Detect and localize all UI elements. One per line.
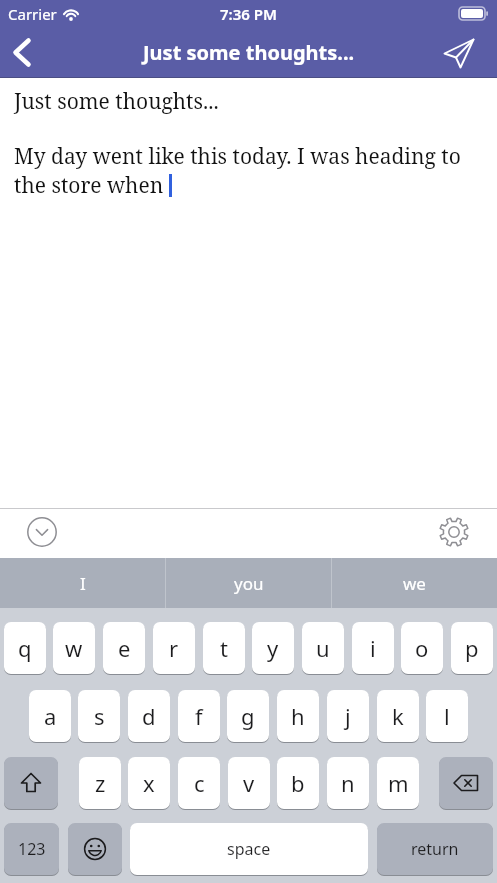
staticText: x — [143, 768, 155, 798]
button[interactable]: return — [377, 823, 493, 875]
staticText: m — [388, 768, 409, 798]
button[interactable]: y — [252, 622, 294, 674]
button[interactable]: m — [377, 757, 419, 809]
staticText: the store when — [14, 171, 169, 200]
button[interactable]: r — [153, 622, 195, 674]
staticText: w — [65, 633, 83, 663]
button[interactable] — [0, 28, 44, 77]
staticText: t — [220, 633, 228, 663]
button[interactable]: z — [79, 757, 121, 809]
button[interactable]: j — [327, 690, 369, 742]
button[interactable] — [4, 757, 58, 809]
button[interactable]: a — [29, 690, 71, 742]
staticText: Carrier — [8, 4, 57, 24]
button[interactable]: g — [227, 690, 269, 742]
button[interactable]: l — [426, 690, 468, 742]
button[interactable]: we — [332, 558, 497, 608]
staticText: u — [316, 633, 330, 663]
staticText: Just some thoughts... — [14, 87, 219, 116]
button[interactable] — [439, 31, 479, 75]
staticText: e — [118, 633, 131, 663]
button[interactable]: h — [277, 690, 319, 742]
staticText: s — [94, 701, 105, 731]
staticText: j — [345, 701, 351, 731]
staticText: f — [195, 701, 203, 731]
button[interactable]: I — [0, 558, 165, 608]
staticText: o — [415, 633, 429, 663]
button[interactable]: space — [130, 823, 368, 875]
button[interactable]: b — [277, 757, 319, 809]
staticText: Just some thoughts... — [143, 39, 355, 66]
button[interactable] — [26, 516, 58, 548]
button[interactable]: you — [166, 558, 331, 608]
button[interactable]: 123 — [4, 823, 59, 875]
button[interactable]: s — [78, 690, 120, 742]
staticText: q — [18, 633, 32, 663]
staticText: l — [444, 701, 450, 731]
button[interactable]: p — [451, 622, 493, 674]
button[interactable]: i — [352, 622, 394, 674]
staticText: space — [227, 838, 271, 860]
staticText: k — [392, 701, 404, 731]
staticText: g — [241, 701, 255, 731]
staticText: r — [169, 633, 179, 663]
button[interactable]: q — [4, 622, 46, 674]
staticText: b — [291, 768, 305, 798]
staticText: I — [80, 572, 86, 595]
staticText: 123 — [18, 838, 46, 860]
button[interactable]: u — [302, 622, 344, 674]
button[interactable]: k — [377, 690, 419, 742]
staticText: a — [44, 701, 57, 731]
staticText: z — [95, 768, 106, 798]
staticText: h — [291, 701, 305, 731]
button[interactable] — [438, 516, 470, 548]
staticText: v — [243, 768, 255, 798]
button[interactable]: v — [228, 757, 270, 809]
button[interactable]: c — [178, 757, 220, 809]
button[interactable] — [68, 823, 122, 875]
staticText: we — [403, 572, 426, 595]
staticText: p — [465, 633, 479, 663]
staticText: 7:36 PM — [220, 4, 277, 24]
button[interactable]: n — [327, 757, 369, 809]
button[interactable]: f — [178, 690, 220, 742]
button[interactable]: w — [53, 622, 95, 674]
button[interactable]: o — [401, 622, 443, 674]
staticText: d — [142, 701, 156, 731]
staticText: i — [370, 633, 376, 663]
staticText: return — [411, 838, 459, 860]
button[interactable]: x — [128, 757, 170, 809]
button[interactable] — [439, 757, 493, 809]
staticText: c — [194, 768, 205, 798]
staticText: y — [267, 633, 279, 663]
button[interactable]: t — [203, 622, 245, 674]
staticText: My day went like this today. I was headi… — [14, 142, 461, 171]
button[interactable]: e — [103, 622, 145, 674]
button[interactable]: d — [128, 690, 170, 742]
staticText: n — [341, 768, 355, 798]
staticText: you — [234, 572, 264, 595]
